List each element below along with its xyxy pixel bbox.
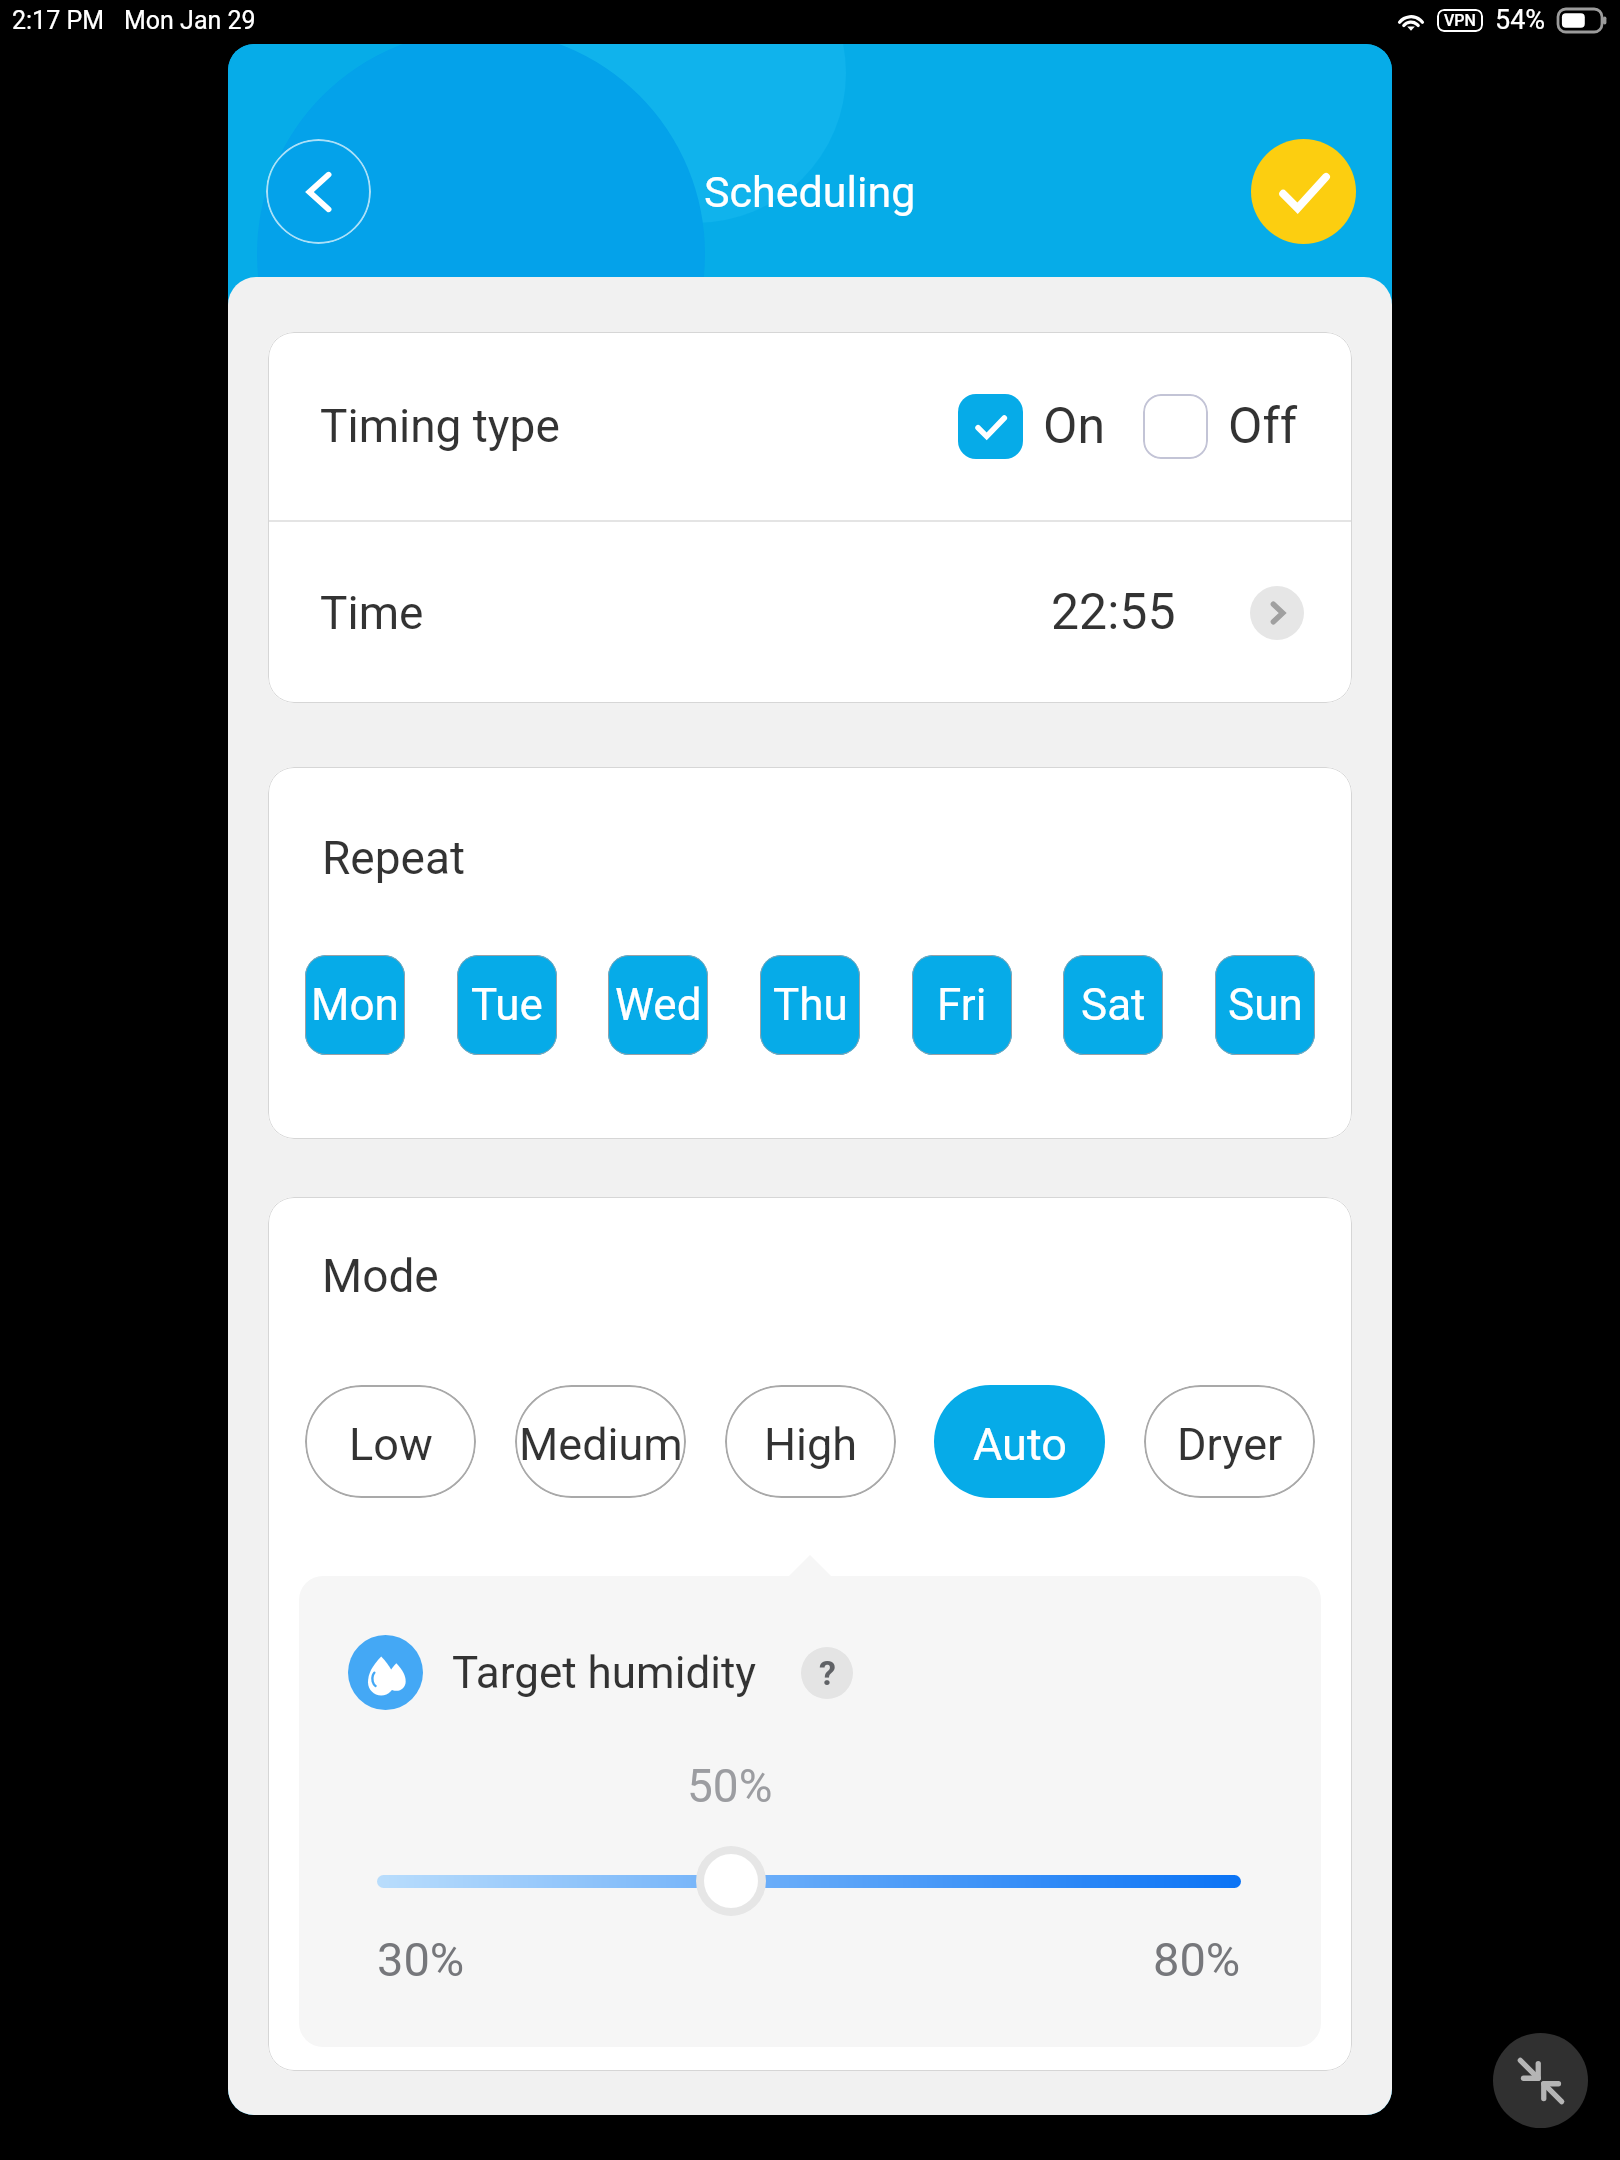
- staticText: 80%: [1153, 1932, 1241, 1987]
- staticText: Mon: [311, 979, 399, 1031]
- staticText: Time: [320, 586, 424, 640]
- button[interactable]: Sat: [1063, 955, 1163, 1055]
- button[interactable]: Wed: [608, 955, 708, 1055]
- staticText: On: [1043, 397, 1106, 456]
- button[interactable]: Confirm: [1251, 139, 1356, 244]
- staticText: Sat: [1081, 979, 1146, 1031]
- staticText: Sun: [1228, 979, 1303, 1031]
- staticText: Fri: [937, 979, 987, 1031]
- staticText: Medium: [519, 1418, 683, 1471]
- staticText: Off: [1228, 397, 1298, 456]
- staticText: Mode: [322, 1249, 439, 1303]
- button[interactable]: High: [725, 1385, 896, 1498]
- staticText: VPN: [1444, 11, 1476, 30]
- staticText: Wed: [615, 979, 702, 1031]
- staticText: Tue: [471, 979, 543, 1031]
- button[interactable]: Shrink window: [1493, 2033, 1588, 2128]
- staticText: Auto: [973, 1418, 1067, 1471]
- button[interactable]: Medium: [515, 1385, 686, 1498]
- button[interactable]: Low: [305, 1385, 476, 1498]
- button[interactable]: On: [958, 394, 1106, 459]
- staticText: 2:17 PM: [12, 6, 105, 35]
- button[interactable]: Dryer: [1144, 1385, 1315, 1498]
- staticText: Thu: [773, 979, 848, 1031]
- staticText: 22:55: [1051, 583, 1176, 642]
- button[interactable]: Thu: [760, 955, 860, 1055]
- staticText: Dryer: [1177, 1418, 1283, 1471]
- button[interactable]: Auto: [934, 1385, 1105, 1498]
- button[interactable]: Fri: [912, 955, 1012, 1055]
- staticText: 30%: [377, 1932, 465, 1987]
- staticText: Target humidity: [452, 1647, 757, 1699]
- staticText: Mon Jan 29: [124, 6, 256, 35]
- staticText: 54%: [1495, 4, 1546, 36]
- staticText: Scheduling: [704, 167, 916, 217]
- button[interactable]: Back: [266, 139, 371, 244]
- staticText: High: [764, 1418, 858, 1471]
- staticText: Repeat: [322, 831, 466, 885]
- button[interactable]: Help: [801, 1647, 853, 1699]
- staticText: ?: [819, 1653, 836, 1693]
- button[interactable]: [696, 1846, 766, 1916]
- button[interactable]: Time: [268, 522, 1352, 703]
- button[interactable]: Mon: [305, 955, 405, 1055]
- staticText: Timing type: [320, 399, 560, 453]
- button[interactable]: Sun: [1215, 955, 1315, 1055]
- button[interactable]: Tue: [457, 955, 557, 1055]
- staticText: Low: [349, 1418, 433, 1471]
- staticText: 50%: [687, 1759, 773, 1813]
- button[interactable]: Off: [1143, 394, 1298, 459]
